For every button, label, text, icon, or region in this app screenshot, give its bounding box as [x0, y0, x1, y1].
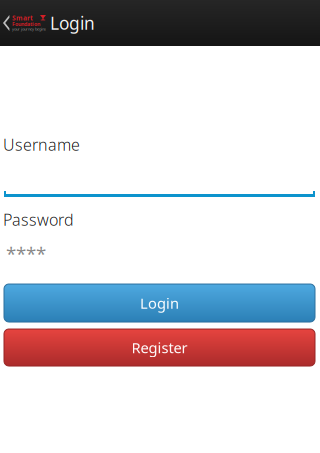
button[interactable]: Register: [4, 329, 315, 366]
staticText: Login: [50, 11, 95, 34]
staticText: Register: [131, 338, 187, 357]
button[interactable]: Back: [0, 0, 50, 46]
button[interactable]: Password: [0, 197, 320, 259]
staticText: Password: [3, 209, 74, 230]
staticText: Login: [140, 293, 179, 313]
staticText: ****: [6, 241, 46, 266]
staticText: your journey begins: [12, 26, 46, 32]
staticText: Username: [3, 134, 80, 155]
button[interactable]: Username: [0, 138, 320, 197]
button[interactable]: Login: [4, 284, 315, 322]
staticText: Smart: [12, 14, 33, 22]
staticText: Foundation: [12, 20, 40, 28]
